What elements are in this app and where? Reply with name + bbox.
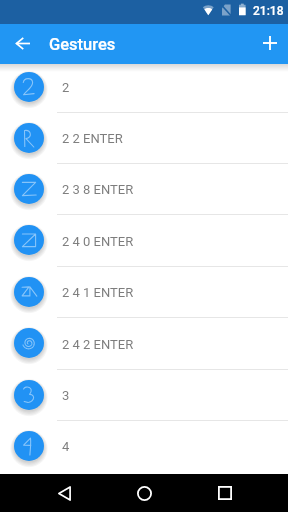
- staticText: 4: [62, 439, 70, 454]
- staticText: 2 4 2 ENTER: [62, 337, 134, 352]
- button[interactable]: Recents: [206, 474, 244, 512]
- staticText: 21:18: [253, 4, 284, 18]
- button[interactable]: 2 2 ENTER: [0, 113, 288, 164]
- staticText: 2: [62, 80, 70, 95]
- button[interactable]: 3: [0, 370, 288, 421]
- button[interactable]: 4: [0, 421, 288, 472]
- staticText: 2 4 1 ENTER: [62, 285, 134, 300]
- button[interactable]: Add gesture: [250, 24, 288, 64]
- button[interactable]: Home: [125, 474, 163, 512]
- staticText: 2 3 8 ENTER: [62, 182, 134, 197]
- button[interactable]: 2 4 2 ENTER: [0, 318, 288, 370]
- staticText: Gestures: [49, 35, 116, 54]
- staticText: 2 4 0 ENTER: [62, 234, 134, 249]
- button[interactable]: 2 4 1 ENTER: [0, 267, 288, 318]
- button[interactable]: Back: [44, 474, 82, 512]
- staticText: 3: [62, 388, 70, 403]
- button[interactable]: 2 4 0 ENTER: [0, 215, 288, 267]
- button[interactable]: 2 3 8 ENTER: [0, 164, 288, 215]
- button[interactable]: 2: [0, 64, 288, 113]
- staticText: 2 2 ENTER: [62, 131, 123, 146]
- button[interactable]: Navigate up: [0, 24, 44, 64]
